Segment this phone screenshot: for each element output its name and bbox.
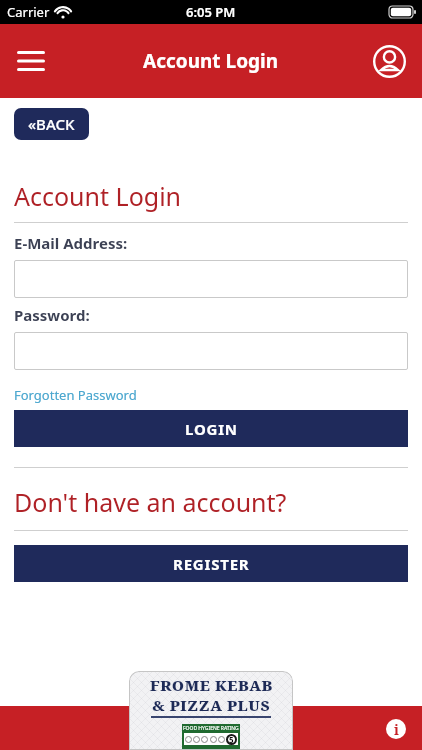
staticText: E-Mail Address: (14, 233, 128, 253)
button[interactable] (17, 51, 45, 71)
staticText: i (394, 720, 399, 739)
staticText: Carrier (7, 3, 50, 21)
staticText: 5 (229, 734, 234, 745)
staticText: REGISTER (173, 554, 250, 574)
button[interactable]: «BACK (14, 108, 89, 140)
staticText: Account Login (143, 48, 279, 74)
staticText: FROME KEBAB (150, 675, 273, 695)
button[interactable]: Forgotten Password (14, 386, 137, 404)
button[interactable] (373, 45, 406, 78)
staticText: LOGIN (185, 419, 238, 439)
staticText: 6:05 PM (186, 3, 236, 21)
button[interactable]: LOGIN (14, 410, 408, 447)
staticText: & PIZZA PLUS (152, 695, 271, 715)
staticText: FOOD HYGIENE RATING (183, 725, 239, 732)
staticText: Account Login (14, 179, 182, 213)
button[interactable]: i (386, 719, 406, 739)
staticText: Password: (14, 305, 90, 325)
staticText: Don't have an account? (14, 485, 287, 519)
button[interactable]: REGISTER (14, 545, 408, 582)
staticText: «BACK (28, 114, 75, 134)
